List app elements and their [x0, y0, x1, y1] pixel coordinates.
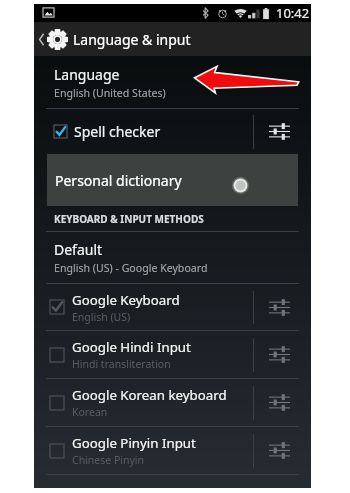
- button[interactable]: Spell checker: [34, 109, 311, 154]
- staticText: Language: [54, 65, 120, 84]
- button[interactable]: Google Keyboard: [34, 284, 311, 330]
- button[interactable]: Settings: [254, 331, 311, 378]
- staticText: Google Korean keyboard: [72, 386, 227, 404]
- button[interactable]: Spell checker settings: [254, 109, 311, 154]
- button[interactable]: Google Pinyin Input: [34, 427, 311, 474]
- button[interactable]: Google Hindi Input: [34, 331, 311, 378]
- button[interactable]: Settings: [254, 379, 311, 426]
- button[interactable]: Default: [34, 232, 311, 283]
- button[interactable]: Personal dictionary: [47, 154, 298, 206]
- staticText: Personal dictionary: [55, 171, 182, 190]
- staticText: Korean: [72, 405, 108, 419]
- staticText: Google Pinyin Input: [72, 434, 196, 452]
- button[interactable]: Settings: [254, 427, 311, 474]
- button[interactable]: Settings: [254, 284, 311, 330]
- staticText: English (United States): [54, 86, 166, 100]
- staticText: 10:42: [276, 4, 310, 22]
- staticText: Hindi transliteration: [72, 357, 171, 371]
- button[interactable]: Language: [34, 56, 311, 108]
- button[interactable]: Google Korean keyboard: [34, 379, 311, 426]
- staticText: Spell checker: [74, 122, 161, 141]
- staticText: English (US) - Google Keyboard: [54, 261, 208, 275]
- button[interactable]: Navigate up: [34, 22, 68, 56]
- staticText: Google Keyboard: [72, 291, 180, 309]
- staticText: KEYBOARD & INPUT METHODS: [54, 212, 204, 226]
- staticText: Google Hindi Input: [72, 338, 191, 356]
- staticText: Chinese Pinyin: [72, 453, 145, 467]
- staticText: English (US): [72, 310, 131, 324]
- staticText: Default: [54, 240, 103, 259]
- staticText: Language & input: [73, 30, 191, 49]
